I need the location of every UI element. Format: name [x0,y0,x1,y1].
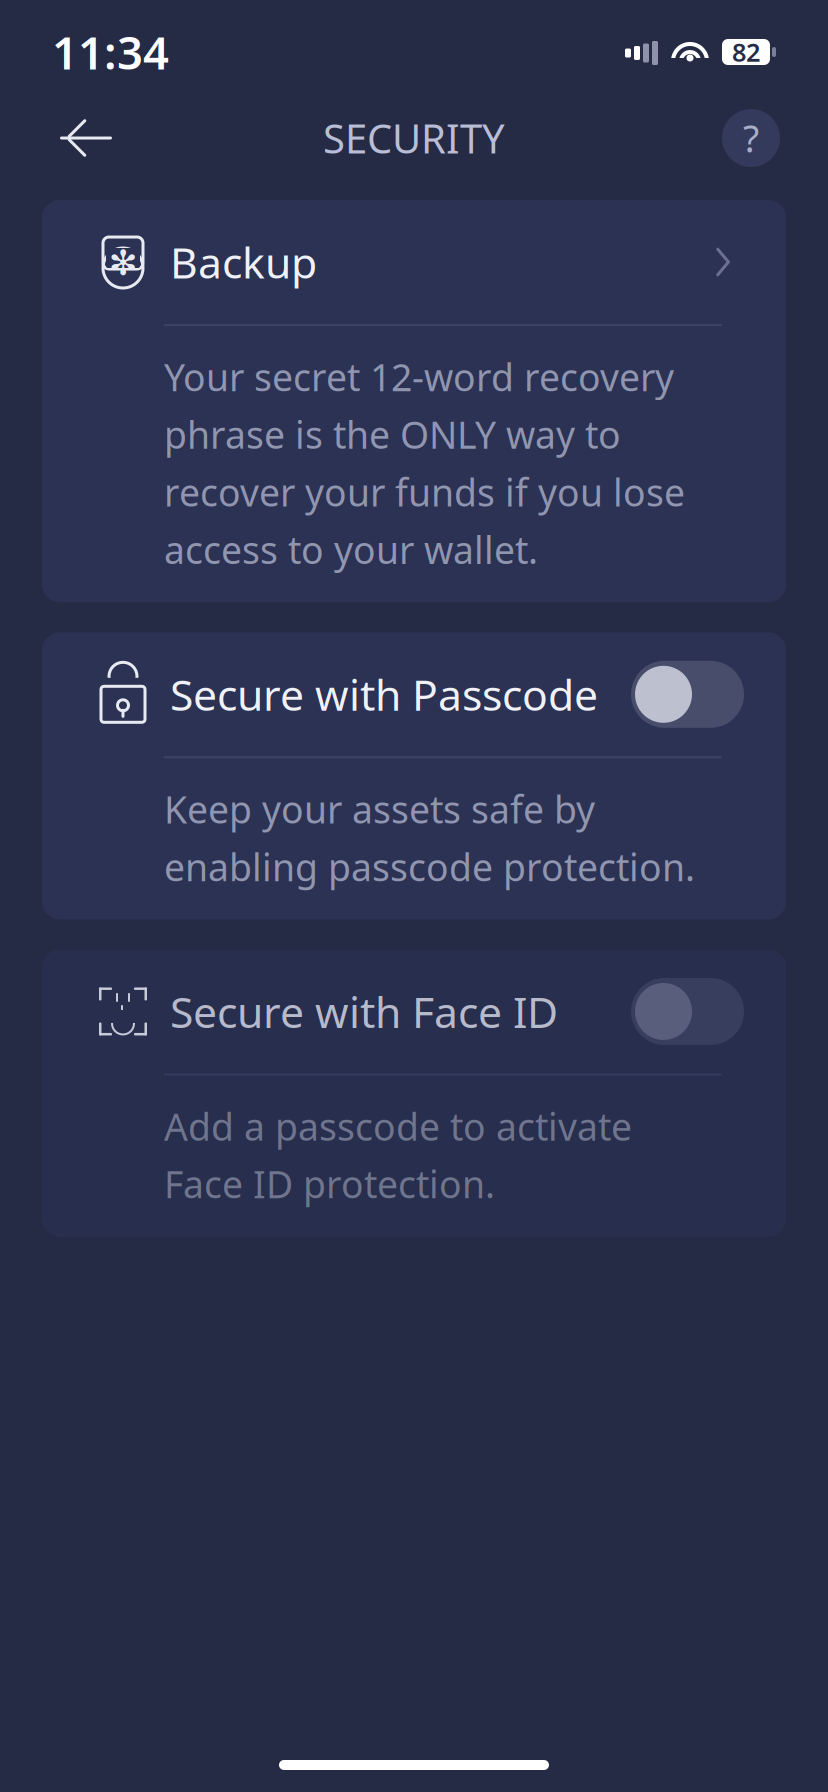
button[interactable]: ✻ [42,200,786,602]
staticText: ✻ [108,243,137,283]
button[interactable]: Secure with Passcode [631,661,744,728]
staticText: SECURITY [323,111,505,164]
staticText: ? [743,113,759,163]
staticText: Keep your assets safe by enabling passco… [164,784,695,891]
staticText: Secure with Face ID [170,983,558,1040]
staticText: Add a passcode to activate Face ID prote… [164,1101,632,1209]
staticText: 82 [732,35,760,69]
staticText: Backup [170,234,317,290]
staticText: Secure with Passcode [170,666,598,723]
button[interactable]: Help [722,109,780,167]
staticText: Your secret 12-word recovery phrase is t… [164,352,685,574]
button[interactable]: Secure with Face ID [631,978,744,1045]
staticText: 11:34 [52,22,169,82]
button[interactable]: Back [48,100,124,176]
